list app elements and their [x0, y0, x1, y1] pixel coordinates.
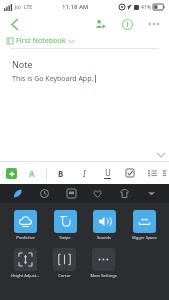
button[interactable]: Keyboard [62, 184, 81, 203]
button[interactable]: Swipe [50, 210, 80, 240]
button[interactable]: More options [146, 16, 162, 32]
button[interactable]: U [101, 167, 113, 179]
staticText: More Settings [90, 273, 117, 278]
staticText: I [83, 168, 86, 179]
staticText: Sounds [97, 235, 111, 240]
button[interactable]: Recent [35, 184, 54, 203]
staticText: Bigger Space [132, 235, 157, 240]
button[interactable]: B [55, 167, 67, 179]
button[interactable]: Theme [8, 184, 27, 203]
button[interactable]: Height Adjustme… [10, 248, 40, 278]
staticText: B [58, 168, 64, 179]
button[interactable]: Bulleted list [146, 167, 158, 179]
button[interactable]: Cursor [49, 248, 79, 278]
button[interactable]: Info [119, 16, 135, 32]
staticText: Cursor [58, 273, 71, 278]
button[interactable]: Favourites [88, 184, 107, 203]
button[interactable]: Collapse [142, 184, 161, 203]
button[interactable]: I [78, 167, 90, 179]
staticText: First Notebook [16, 36, 66, 46]
staticText: Note [12, 58, 33, 70]
staticText: A [29, 168, 35, 179]
button[interactable]: Add attachment [6, 168, 17, 179]
staticText: Swipe [59, 235, 71, 240]
button[interactable]: Bigger Space [129, 210, 159, 240]
button[interactable]: Checklist [124, 167, 136, 179]
staticText: Height Adjustme… [10, 273, 40, 278]
staticText: This is Go Keyboard App. [12, 74, 94, 84]
button[interactable]: Skins [115, 184, 134, 203]
staticText: U [105, 167, 111, 178]
button[interactable]: First Notebook [0, 34, 169, 48]
staticText: Predictive [16, 235, 35, 240]
staticText: 41% [141, 4, 151, 11]
button[interactable]: Sounds [89, 210, 119, 240]
staticText: LTE [24, 4, 33, 11]
button[interactable]: Back [7, 16, 23, 32]
staticText: Jio [15, 4, 21, 11]
button[interactable]: Collapse [153, 148, 169, 162]
button[interactable]: Add person [92, 16, 108, 32]
button[interactable]: More Settings [88, 248, 118, 278]
button[interactable]: Text style [26, 167, 38, 179]
staticText: 11:18 AM [62, 3, 89, 11]
button[interactable]: Predictive [10, 210, 40, 240]
